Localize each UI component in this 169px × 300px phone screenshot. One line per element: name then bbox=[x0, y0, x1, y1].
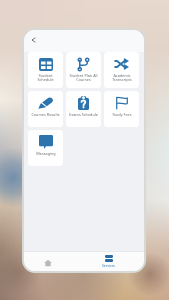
button[interactable]: Student Plan All Courses bbox=[66, 52, 101, 88]
button[interactable]: Student Schedule bbox=[28, 52, 63, 88]
staticText: Academic Transcripts bbox=[112, 73, 132, 82]
button[interactable]: Courses Results bbox=[28, 91, 63, 127]
staticText: Student Schedule bbox=[37, 73, 54, 82]
button[interactable]: Messaging bbox=[28, 130, 63, 166]
button[interactable]: Home bbox=[39, 254, 56, 271]
button[interactable]: Services bbox=[96, 252, 120, 269]
button[interactable]: Academic Transcripts bbox=[104, 52, 139, 88]
staticText: Services bbox=[102, 263, 115, 268]
staticText: Study Fees bbox=[112, 112, 132, 117]
staticText: Courses Results bbox=[31, 112, 60, 117]
staticText: Messaging bbox=[36, 151, 56, 156]
button[interactable]: Study Fees bbox=[104, 91, 139, 127]
button[interactable]: Back bbox=[27, 33, 40, 46]
staticText: Exams Schedule bbox=[69, 112, 98, 117]
staticText: Student Plan All Courses bbox=[69, 73, 98, 82]
button[interactable]: Exams Schedule bbox=[66, 91, 101, 127]
